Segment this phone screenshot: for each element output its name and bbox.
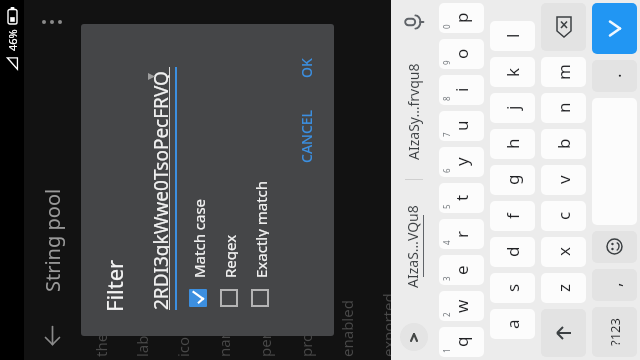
- staticText: 5: [441, 204, 452, 209]
- staticText: enabled: [337, 300, 357, 357]
- staticText: r: [450, 230, 473, 238]
- staticText: process: [296, 302, 316, 357]
- staticText: 4: [441, 240, 452, 245]
- button[interactable]: m: [541, 57, 586, 87]
- button[interactable]: n: [541, 93, 586, 123]
- staticText: f: [501, 213, 524, 219]
- button[interactable]: k: [490, 57, 535, 87]
- staticText: name: [214, 316, 234, 357]
- button[interactable]: i: [439, 75, 484, 105]
- staticText: String pool: [39, 188, 66, 292]
- button[interactable]: OK: [288, 50, 325, 86]
- staticText: Regex: [220, 234, 238, 278]
- button[interactable]: Emoji: [592, 231, 637, 263]
- staticText: theme: [91, 311, 111, 357]
- button[interactable]: Navigate up: [32, 316, 72, 356]
- button[interactable]: label: [121, 0, 162, 360]
- button[interactable]: l: [490, 21, 535, 51]
- staticText: 1: [441, 348, 452, 353]
- staticText: a: [501, 319, 524, 329]
- button[interactable]: y: [439, 147, 484, 177]
- staticText: label: [132, 323, 152, 357]
- staticText: Match case: [189, 198, 207, 278]
- button[interactable]: enabled: [326, 0, 367, 360]
- staticText: i: [450, 87, 473, 92]
- staticText: 2RDI3gkWwe0TsoPecFRVQu8: [148, 67, 170, 310]
- staticText: AIzaSy…frvqu8: [404, 63, 423, 160]
- button[interactable]: ?123: [592, 307, 637, 357]
- button[interactable]: z: [541, 273, 586, 303]
- button[interactable]: e: [439, 255, 484, 285]
- staticText: Exactly match: [251, 180, 269, 278]
- button[interactable]: permission: [244, 0, 285, 360]
- button[interactable]: h: [490, 129, 535, 159]
- button[interactable]: Voice input: [391, 0, 436, 44]
- staticText: u: [450, 120, 473, 131]
- staticText: e: [450, 265, 473, 275]
- staticText: w: [450, 299, 473, 313]
- staticText: OK: [297, 58, 316, 78]
- button[interactable]: Shift: [541, 309, 586, 357]
- button[interactable]: CANCEL: [288, 101, 325, 171]
- staticText: m: [552, 64, 575, 80]
- staticText: .: [603, 73, 626, 78]
- staticText: 0: [441, 24, 452, 29]
- button[interactable]: u: [439, 111, 484, 141]
- staticText: b: [552, 138, 575, 149]
- button[interactable]: f: [490, 201, 535, 231]
- staticText: v: [552, 175, 575, 184]
- staticText: c: [552, 211, 575, 220]
- staticText: AIzaS…VQu8: [403, 205, 422, 288]
- staticText: d: [501, 246, 524, 257]
- staticText: Filter: [99, 259, 129, 312]
- button[interactable]: g: [490, 165, 535, 195]
- staticText: 6: [441, 168, 452, 173]
- staticText: ,: [603, 282, 626, 287]
- button[interactable]: Enter: [592, 3, 637, 54]
- button[interactable]: a: [490, 309, 535, 339]
- button[interactable]: s: [490, 273, 535, 303]
- staticText: n: [552, 102, 575, 113]
- staticText: p: [450, 12, 473, 23]
- button[interactable]: Regex: [220, 24, 238, 336]
- staticText: j: [501, 105, 524, 110]
- button[interactable]: c: [541, 201, 586, 231]
- button[interactable]: .: [592, 60, 637, 92]
- button[interactable]: w: [439, 291, 484, 321]
- staticText: 2: [441, 312, 452, 317]
- button[interactable]: process: [285, 0, 326, 360]
- button[interactable]: o: [439, 39, 484, 69]
- button[interactable]: t: [439, 183, 484, 213]
- button[interactable]: j: [490, 93, 535, 123]
- staticText: icon: [173, 327, 193, 357]
- button[interactable]: q: [439, 327, 484, 357]
- staticText: l: [501, 33, 524, 38]
- button[interactable]: icon: [162, 0, 203, 360]
- button[interactable]: AIzaS…VQu8: [391, 180, 436, 314]
- staticText: exported: [378, 293, 398, 357]
- button[interactable]: Expand suggestions: [391, 314, 436, 360]
- staticText: permission: [255, 278, 275, 357]
- staticText: 46%: [5, 29, 20, 51]
- button[interactable]: Exactly match: [251, 24, 269, 336]
- button[interactable]: b: [541, 129, 586, 159]
- staticText: 9: [441, 60, 452, 65]
- button[interactable]: AIzaSy…frvqu8: [391, 44, 436, 179]
- button[interactable]: exported: [367, 0, 408, 360]
- staticText: q: [450, 336, 473, 347]
- button[interactable]: v: [541, 165, 586, 195]
- staticText: 7: [441, 132, 452, 137]
- button[interactable]: theme: [80, 0, 121, 360]
- button[interactable]: Match case: [189, 24, 207, 336]
- button[interactable]: ,: [592, 269, 637, 301]
- button[interactable]: d: [490, 237, 535, 267]
- button[interactable]: r: [439, 219, 484, 249]
- staticText: 3: [441, 276, 452, 281]
- button[interactable]: p: [439, 3, 484, 33]
- button[interactable]: name: [203, 0, 244, 360]
- staticText: z: [552, 284, 575, 292]
- button[interactable]: Backspace: [541, 3, 586, 51]
- button[interactable]: x: [541, 237, 586, 267]
- button[interactable]: More options: [32, 2, 72, 42]
